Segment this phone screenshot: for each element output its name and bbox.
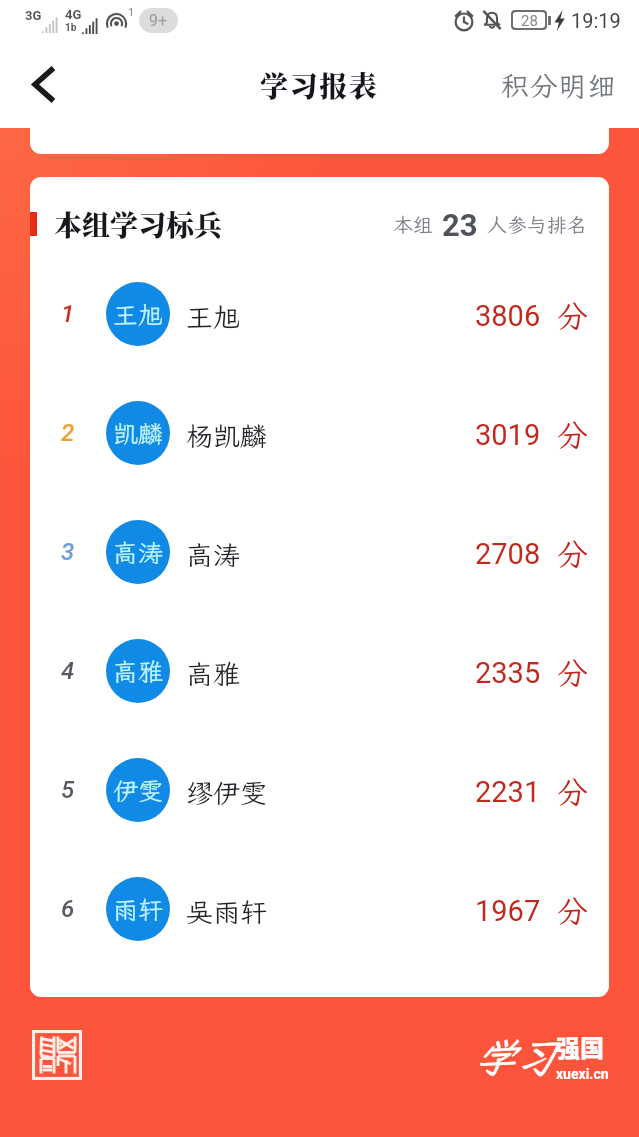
button[interactable]: 积分明细	[477, 52, 639, 117]
staticText: 23	[442, 207, 478, 243]
staticText: 4G	[65, 7, 82, 22]
staticText: 3806	[475, 299, 541, 333]
staticText: 高雅	[113, 655, 164, 688]
staticText: 1	[128, 6, 135, 19]
staticText: 人参与排名	[487, 211, 587, 237]
staticText: 1b	[65, 22, 77, 34]
staticText: 分	[557, 652, 588, 693]
button[interactable]: Back	[10, 51, 76, 117]
staticText: 吴雨轩	[186, 894, 267, 930]
button[interactable]: 6	[30, 876, 609, 941]
staticText: 28	[521, 12, 538, 28]
staticText: 19:19	[571, 9, 621, 32]
staticText: 分	[557, 890, 588, 931]
button[interactable]: 2	[30, 400, 609, 465]
staticText: 杨凯麟	[186, 418, 267, 454]
staticText: 3	[61, 538, 75, 566]
staticText: 1	[61, 300, 75, 328]
staticText: 强国	[556, 1029, 604, 1064]
staticText: 4	[61, 657, 75, 685]
button[interactable]: 3	[30, 519, 609, 584]
staticText: 积分明细	[501, 67, 617, 104]
staticText: 9+	[149, 11, 168, 30]
staticText: 2	[61, 419, 75, 447]
staticText: 3019	[475, 418, 541, 452]
staticText: 分	[557, 414, 588, 455]
staticText: 王旭	[113, 298, 164, 331]
staticText: 2231	[475, 775, 541, 809]
staticText: 高涛	[113, 536, 164, 569]
staticText: 分	[557, 533, 588, 574]
staticText: xuexi.cn	[556, 1066, 609, 1082]
staticText: 分	[557, 295, 588, 336]
staticText: 2335	[475, 656, 541, 690]
staticText: 5	[61, 776, 75, 804]
staticText: 高雅	[186, 656, 240, 692]
button[interactable]: 5	[30, 757, 609, 822]
staticText: 学习	[474, 1031, 554, 1084]
staticText: 王旭	[186, 299, 240, 335]
staticText: 分	[557, 771, 588, 812]
staticText: 2708	[475, 537, 541, 571]
staticText: 雨轩	[113, 893, 164, 926]
staticText: 伊雯	[113, 774, 164, 807]
staticText: 6	[61, 895, 75, 923]
staticText: 本组学习标兵	[54, 204, 223, 244]
staticText: 本组	[393, 211, 433, 237]
staticText: 3G	[25, 8, 42, 23]
button[interactable]: 1	[30, 281, 609, 346]
staticText: 缪伊雯	[186, 775, 267, 811]
other: Seal	[32, 1030, 82, 1080]
staticText: 学习报表	[260, 65, 379, 105]
button[interactable]: 4	[30, 638, 609, 703]
staticText: 1967	[475, 894, 541, 928]
staticText: 高涛	[186, 537, 240, 573]
staticText: 凯麟	[113, 417, 164, 450]
